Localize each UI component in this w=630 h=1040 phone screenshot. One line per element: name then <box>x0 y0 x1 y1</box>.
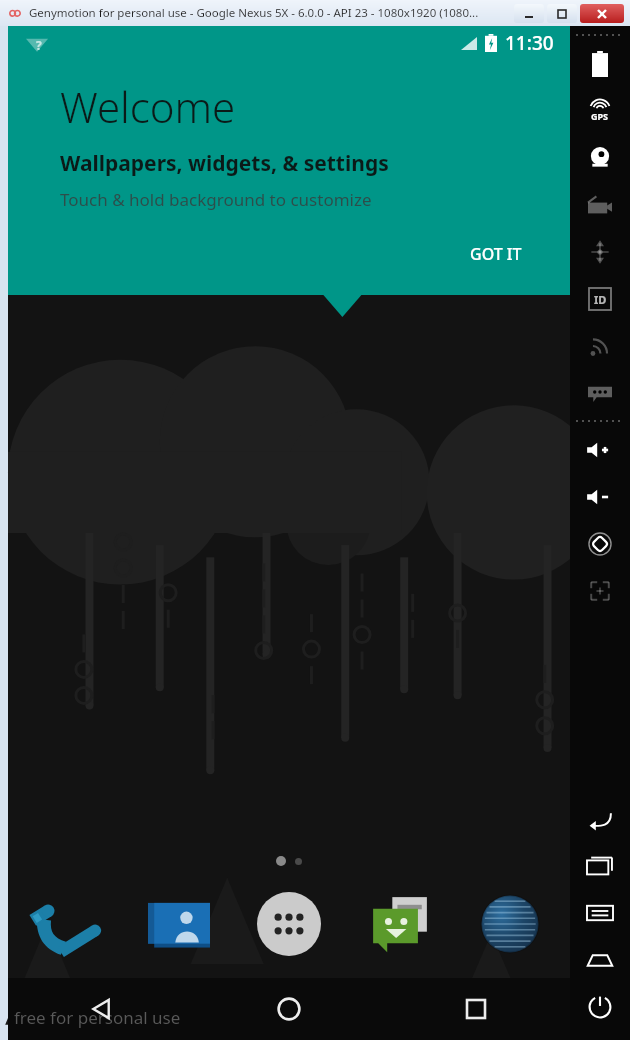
staticText: GPS <box>591 110 609 122</box>
button[interactable]: Close <box>580 4 624 23</box>
button[interactable]: Home <box>570 936 630 983</box>
button[interactable]: Volume up <box>570 426 630 473</box>
button[interactable]: Back <box>570 795 630 842</box>
button[interactable]: SMS <box>570 369 630 416</box>
button[interactable]: Rotate <box>570 520 630 567</box>
button[interactable]: Browser <box>464 878 556 970</box>
button[interactable]: Apps <box>243 878 335 970</box>
staticText: GOT IT <box>470 243 522 265</box>
staticText: Wallpapers, widgets, & settings <box>60 149 389 178</box>
button[interactable]: Back <box>74 981 130 1037</box>
button[interactable]: Camera <box>570 134 630 181</box>
button[interactable]: Battery <box>570 40 630 87</box>
button[interactable]: Screen size <box>570 567 630 614</box>
button[interactable]: Network <box>570 322 630 369</box>
button[interactable]: Menu <box>570 889 630 936</box>
button[interactable]: Power <box>570 983 630 1030</box>
button[interactable]: Maximize <box>547 4 577 23</box>
button[interactable]: Recents <box>570 842 630 889</box>
button[interactable]: Phone <box>22 878 114 970</box>
staticText: ? <box>36 37 42 53</box>
button[interactable]: Video recorder <box>570 181 630 228</box>
button[interactable]: GPS <box>570 87 630 134</box>
button[interactable]: Accelerometer <box>570 228 630 275</box>
staticText: Genymotion for personal use - Google Nex… <box>29 5 479 21</box>
button[interactable]: Volume down <box>570 473 630 520</box>
button[interactable]: GOT IT <box>460 235 532 273</box>
button[interactable]: Messaging <box>354 878 446 970</box>
staticText: free for personal use <box>14 1006 181 1029</box>
button[interactable]: Minimize <box>514 4 544 23</box>
staticText: Touch & hold background to customize <box>60 188 372 211</box>
button[interactable]: Contacts <box>133 878 225 970</box>
button[interactable]: Recent apps <box>448 981 504 1037</box>
staticText: Welcome <box>60 78 236 135</box>
button[interactable]: Identifiers <box>570 275 630 322</box>
staticText: 11:30 <box>505 30 554 56</box>
staticText: ID <box>594 292 607 307</box>
button[interactable]: Home <box>261 981 317 1037</box>
